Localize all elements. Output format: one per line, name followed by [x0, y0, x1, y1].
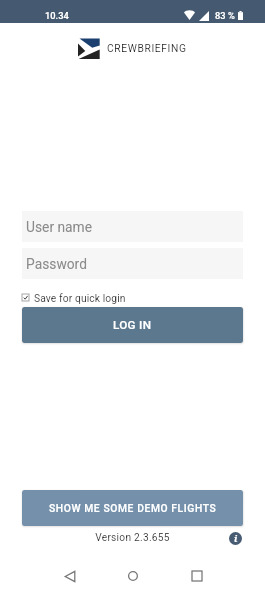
button[interactable]: Password: [22, 248, 243, 279]
button[interactable]: About this app: [229, 532, 242, 545]
staticText: Version 2.3.655: [0, 532, 265, 544]
button[interactable]: LOG IN: [22, 307, 243, 343]
button[interactable]: Recent apps: [180, 559, 214, 592]
button[interactable]: Home: [116, 559, 150, 592]
button[interactable]: Save for quick login: [22, 288, 126, 306]
button[interactable]: User name: [22, 211, 243, 242]
staticText: i: [234, 532, 238, 545]
staticText: 10.34: [45, 10, 69, 21]
staticText: CREWBRIEFING: [107, 42, 187, 54]
staticText: SHOW ME SOME DEMO FLIGHTS: [49, 502, 217, 514]
staticText: 83 %: [215, 10, 235, 21]
staticText: Password: [26, 256, 87, 272]
staticText: LOG IN: [113, 318, 152, 332]
button[interactable]: Back: [53, 559, 87, 592]
button[interactable]: SHOW ME SOME DEMO FLIGHTS: [22, 490, 243, 526]
staticText: Save for quick login: [34, 292, 126, 304]
staticText: User name: [26, 219, 93, 235]
